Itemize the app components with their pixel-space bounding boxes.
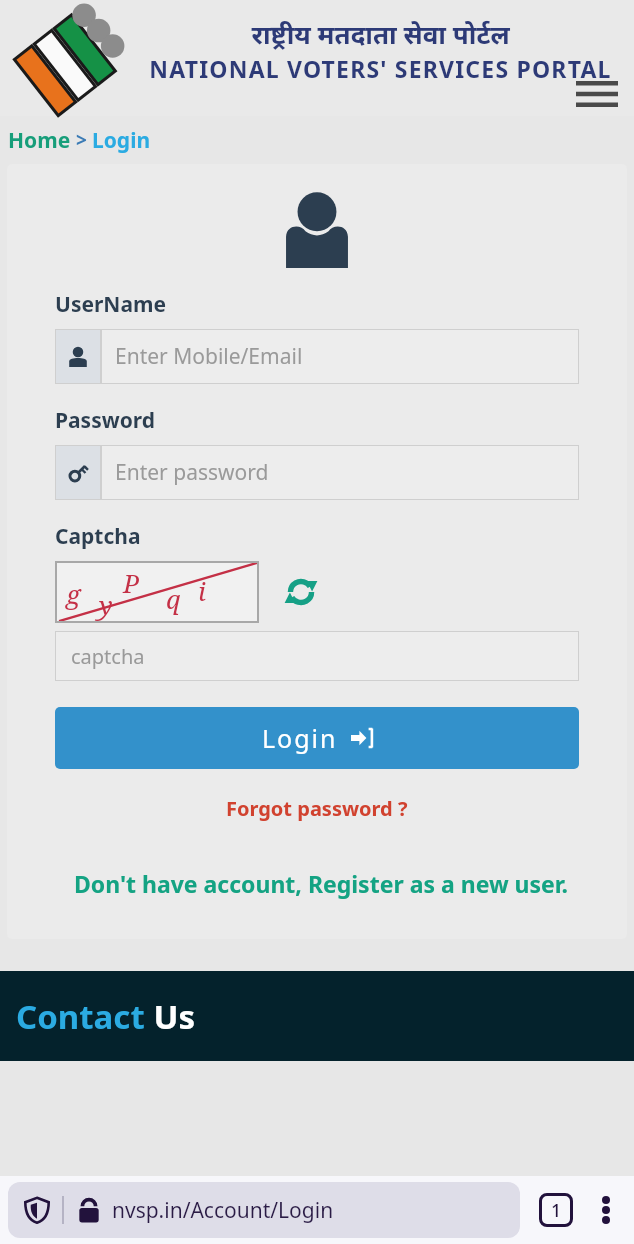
staticText: Password <box>55 406 156 435</box>
staticText: i <box>198 573 206 608</box>
staticText: g <box>66 576 81 611</box>
button[interactable]: Tabs <box>534 1188 578 1232</box>
staticText: Contact <box>16 994 145 1039</box>
button[interactable]: Forgot password ? <box>226 795 408 822</box>
staticText: Enter Mobile/Email <box>115 342 303 371</box>
button[interactable]: Enter Mobile/Email <box>55 329 579 384</box>
staticText: P <box>123 565 140 600</box>
staticText: q <box>166 581 181 616</box>
staticText: y <box>99 587 113 622</box>
staticText: > <box>71 127 92 153</box>
staticText: Enter password <box>115 458 269 487</box>
button[interactable]: Brave Shields <box>8 1182 520 1238</box>
staticText: Captcha <box>55 522 141 551</box>
staticText: nvsp.in/Account/Login <box>112 1196 334 1225</box>
button[interactable]: More options <box>586 1190 626 1230</box>
button[interactable]: Don't have account, Register as a new us… <box>74 868 568 899</box>
button[interactable]: Enter password <box>55 445 579 500</box>
staticText: UserName <box>55 290 167 319</box>
button[interactable]: Menu <box>574 74 620 114</box>
staticText: राष्ट्रीय मतदाता सेवा पोर्टल <box>251 16 510 51</box>
button[interactable]: Login <box>92 126 151 155</box>
button[interactable]: Brave Shields <box>22 1195 52 1225</box>
button[interactable]: Login <box>55 707 579 769</box>
button[interactable]: Refresh captcha <box>279 570 323 614</box>
button[interactable]: captcha <box>55 631 579 681</box>
staticText: Us <box>145 994 196 1039</box>
staticText: 1 <box>551 1198 562 1223</box>
staticText: NATIONAL VOTERS' SERVICES PORTAL <box>149 53 612 84</box>
staticText: Login <box>262 721 338 755</box>
button[interactable]: Home <box>8 126 71 155</box>
staticText: captcha <box>71 643 145 670</box>
